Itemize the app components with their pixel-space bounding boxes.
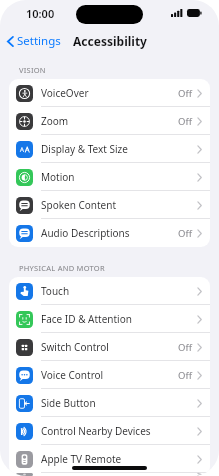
button[interactable]: Spoken Content bbox=[9, 191, 210, 219]
button[interactable]: Switch Control bbox=[9, 333, 210, 361]
staticText: Spoken Content bbox=[41, 198, 117, 212]
staticText: Side Button bbox=[41, 396, 96, 410]
button[interactable]: Keyboards bbox=[9, 473, 210, 476]
staticText: Accessibility bbox=[73, 33, 147, 49]
button[interactable]: Touch bbox=[9, 277, 210, 305]
staticText: Voice Control bbox=[41, 368, 104, 382]
staticText: PHYSICAL AND MOTOR bbox=[19, 263, 105, 273]
staticText: Audio Descriptions bbox=[41, 226, 130, 240]
staticText: Face ID & Attention bbox=[41, 312, 132, 326]
button[interactable]: Control Nearby Devices bbox=[9, 417, 210, 445]
staticText: VISION bbox=[19, 65, 46, 75]
staticText: Off bbox=[178, 227, 192, 240]
button[interactable]: Face ID & Attention bbox=[9, 305, 210, 333]
staticText: VoiceOver bbox=[41, 86, 89, 100]
button[interactable]: Audio Descriptions bbox=[9, 219, 210, 247]
staticText: Touch bbox=[41, 284, 70, 298]
button[interactable]: Voice Control bbox=[9, 361, 210, 389]
button[interactable]: Side Button bbox=[9, 389, 210, 417]
staticText: Control Nearby Devices bbox=[41, 424, 151, 438]
button[interactable]: Settings bbox=[0, 30, 67, 52]
button[interactable]: VoiceOver bbox=[9, 79, 210, 107]
staticText: Off bbox=[178, 115, 192, 128]
staticText: Zoom bbox=[41, 114, 69, 128]
staticText: Apple TV Remote bbox=[41, 452, 122, 466]
staticText: 10:00 bbox=[26, 6, 55, 21]
staticText: Display & Text Size bbox=[41, 142, 128, 156]
staticText: Off bbox=[178, 341, 192, 354]
staticText: Off bbox=[178, 87, 192, 100]
staticText: Motion bbox=[41, 170, 75, 184]
staticText: Switch Control bbox=[41, 340, 109, 354]
button[interactable]: Motion bbox=[9, 163, 210, 191]
staticText: Settings bbox=[17, 33, 61, 49]
button[interactable]: Zoom bbox=[9, 107, 210, 135]
staticText: Off bbox=[178, 369, 192, 382]
button[interactable]: Display & Text Size bbox=[9, 135, 210, 163]
button[interactable]: Apple TV Remote bbox=[9, 445, 210, 473]
